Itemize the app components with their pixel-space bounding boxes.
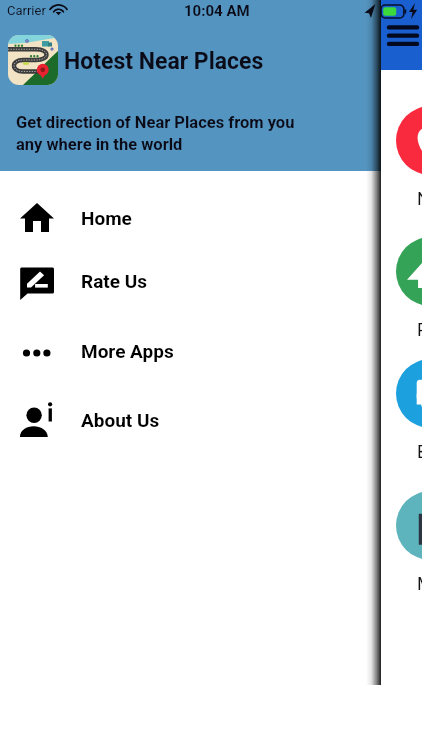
button[interactable]: Places	[396, 237, 422, 306]
staticText: Rate Us	[81, 270, 148, 292]
staticText: Hotest Near Places	[64, 48, 264, 75]
button[interactable]: Bus	[396, 359, 422, 428]
staticText: Places	[417, 319, 422, 340]
staticText: Map	[417, 573, 422, 594]
button[interactable]: Near	[396, 106, 422, 175]
button[interactable]: Rate Us	[0, 250, 381, 312]
staticText: 10:04 AM	[184, 2, 250, 20]
staticText: About Us	[81, 409, 160, 431]
button[interactable]: Open navigation menu	[381, 16, 422, 54]
button[interactable]: About Us	[0, 389, 381, 451]
button[interactable]: Home	[0, 188, 381, 250]
staticText: Get direction of Near Places from you an…	[16, 113, 295, 154]
staticText: More Apps	[81, 340, 174, 362]
staticText: Home	[81, 207, 132, 229]
button[interactable]: More Apps	[0, 320, 381, 382]
button[interactable]: Map	[396, 491, 422, 560]
staticText: Carrier	[7, 3, 46, 18]
staticText: Near	[417, 188, 422, 209]
staticText: Bus	[417, 441, 422, 462]
